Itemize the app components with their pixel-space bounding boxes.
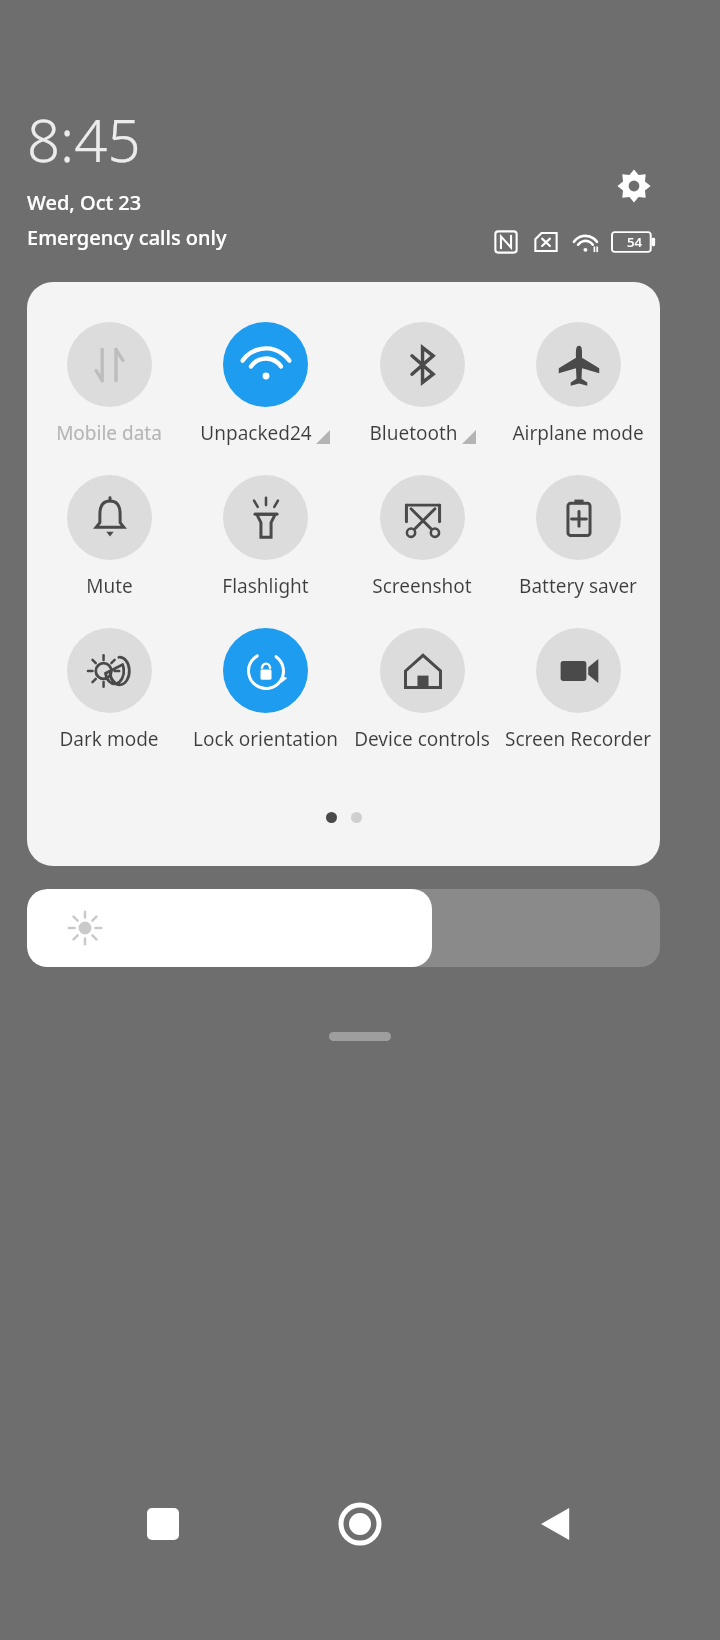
- button[interactable]: Device controls: [348, 628, 496, 752]
- button[interactable]: Recents: [129, 1490, 197, 1558]
- button[interactable]: Screenshot: [348, 475, 496, 599]
- button[interactable]: Home: [326, 1490, 394, 1558]
- staticText: 8:45: [27, 100, 141, 179]
- button[interactable]: Bluetooth: [348, 322, 496, 446]
- button[interactable]: Lock orientation: [191, 628, 339, 752]
- staticText: Mute: [86, 573, 133, 599]
- button[interactable]: Airplane mode: [504, 322, 652, 446]
- staticText: Unpacked24: [200, 420, 312, 446]
- staticText: Mobile data: [56, 420, 162, 446]
- staticText: Screenshot: [372, 573, 472, 599]
- staticText: Airplane mode: [512, 420, 644, 446]
- button[interactable]: Battery saver: [504, 475, 652, 599]
- staticText: Lock orientation: [193, 726, 338, 752]
- button[interactable]: Back: [523, 1490, 591, 1558]
- staticText: Dark mode: [59, 726, 159, 752]
- button[interactable]: Mute: [35, 475, 183, 599]
- staticText: Flashlight: [222, 573, 309, 599]
- staticText: Emergency calls only: [27, 224, 227, 251]
- staticText: Wed, Oct 23: [27, 189, 142, 216]
- button[interactable]: Flashlight: [191, 475, 339, 599]
- staticText: Bluetooth: [369, 420, 458, 446]
- button[interactable]: Brightness: [27, 889, 660, 967]
- button[interactable]: Screen Recorder: [504, 628, 652, 752]
- button[interactable]: Mobile data: [35, 322, 183, 446]
- staticText: Battery saver: [519, 573, 637, 599]
- staticText: Device controls: [354, 726, 490, 752]
- staticText: 54: [627, 233, 642, 251]
- staticText: Screen Recorder: [505, 726, 651, 752]
- button[interactable]: Unpacked24: [191, 322, 339, 446]
- button[interactable]: Settings: [608, 160, 660, 212]
- button[interactable]: Dark mode: [35, 628, 183, 752]
